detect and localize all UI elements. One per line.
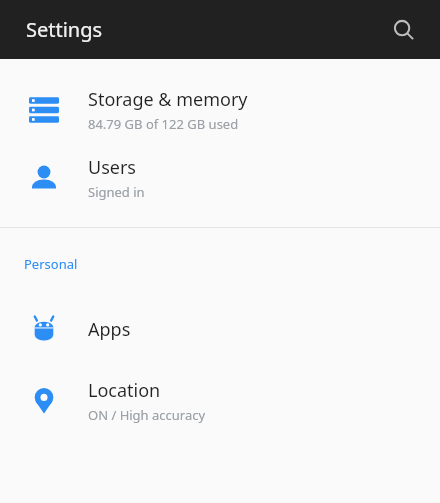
staticText: Settings bbox=[26, 16, 103, 43]
button[interactable]: Apps bbox=[0, 314, 440, 344]
staticText: 84.79 GB of 122 GB used bbox=[88, 115, 239, 133]
staticText: Apps bbox=[88, 317, 131, 342]
staticText: Personal bbox=[24, 255, 78, 273]
staticText: ON / High accuracy bbox=[88, 406, 206, 424]
button[interactable]: Users bbox=[0, 155, 440, 201]
staticText: Users bbox=[88, 155, 136, 180]
button[interactable]: Location bbox=[0, 378, 440, 424]
button[interactable]: Search bbox=[380, 6, 428, 54]
staticText: Signed in bbox=[88, 183, 145, 201]
button[interactable]: Storage & memory bbox=[0, 87, 440, 133]
staticText: Storage & memory bbox=[88, 87, 248, 112]
staticText: Location bbox=[88, 378, 161, 403]
